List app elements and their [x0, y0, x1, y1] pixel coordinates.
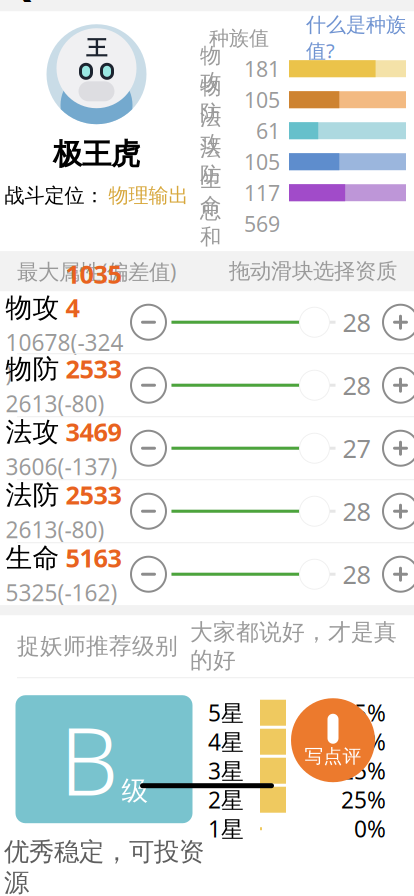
- staticText: 117: [244, 179, 280, 207]
- staticText: 物防: [200, 73, 221, 126]
- staticText: 物防: [5, 353, 59, 385]
- button[interactable]: Increase 法防: [377, 486, 414, 536]
- staticText: 10678(-324): [5, 327, 123, 387]
- staticText: 2533: [65, 352, 121, 385]
- staticText: 28: [342, 368, 370, 402]
- staticText: 法攻: [200, 104, 221, 157]
- staticText: 物攻: [200, 42, 221, 95]
- button[interactable]: Decrease 法防: [125, 486, 171, 536]
- button[interactable]: 写点评: [291, 698, 375, 782]
- staticText: 战斗定位：: [4, 183, 104, 208]
- staticText: 法防: [5, 479, 59, 511]
- button[interactable]: 什么是种族值?: [306, 13, 406, 64]
- staticText: 物理输出: [108, 183, 188, 208]
- staticText: 捉妖师推荐级别: [17, 632, 178, 660]
- button[interactable]: Increase 法攻: [377, 423, 414, 473]
- staticText: B: [59, 697, 118, 821]
- staticText: 25%: [341, 727, 386, 757]
- staticText: 105: [244, 148, 280, 176]
- staticText: 王: [86, 35, 107, 61]
- staticText: 3星: [208, 756, 244, 786]
- staticText: 25%: [341, 785, 386, 815]
- staticText: 生命: [5, 542, 59, 574]
- staticText: 27: [342, 431, 370, 465]
- staticText: 5星: [208, 698, 244, 728]
- staticText: 生命: [200, 166, 221, 219]
- staticText: 最大属性(偏差值): [17, 257, 176, 285]
- staticText: 28: [342, 494, 370, 528]
- staticText: 569: [244, 210, 280, 238]
- staticText: 25%: [341, 756, 386, 786]
- staticText: 级: [121, 774, 148, 807]
- staticText: 2533: [65, 478, 121, 511]
- staticText: 总和: [200, 197, 221, 250]
- staticText: 4星: [208, 727, 244, 757]
- staticText: 拖动滑块选择资质: [229, 258, 397, 284]
- staticText: 61: [256, 117, 280, 145]
- staticText: 3606(-137): [5, 451, 117, 482]
- staticText: 物攻: [5, 291, 59, 324]
- staticText: 2星: [208, 785, 244, 815]
- staticText: 什么是种族值?: [306, 13, 406, 64]
- button[interactable]: Decrease 法攻: [125, 423, 171, 473]
- staticText: 法防: [200, 135, 221, 188]
- button[interactable]: Back: [0, 0, 46, 6]
- staticText: 种族值: [209, 26, 269, 50]
- button[interactable]: Decrease 生命: [125, 549, 171, 599]
- staticText: 181: [244, 55, 280, 83]
- staticText: 1星: [208, 814, 244, 844]
- staticText: ❮: [9, 0, 36, 1]
- staticText: 28: [342, 557, 370, 591]
- staticText: 25%: [341, 698, 386, 728]
- staticText: 大家都说好，才是真的好: [190, 618, 397, 674]
- button[interactable]: Decrease 物防: [125, 360, 171, 410]
- staticText: 优秀稳定，可投资源: [4, 836, 204, 896]
- staticText: 3469: [65, 415, 121, 448]
- staticText: 2613(-80): [5, 514, 104, 545]
- staticText: 法攻: [5, 416, 59, 448]
- staticText: 0%: [354, 814, 386, 844]
- staticText: 28: [342, 305, 370, 339]
- button[interactable]: Increase 生命: [377, 549, 414, 599]
- staticText: 2613(-80): [5, 388, 104, 419]
- staticText: 极王虎: [53, 136, 140, 172]
- staticText: 5163: [65, 541, 121, 574]
- staticText: 5325(-162): [5, 577, 117, 608]
- staticText: 10354: [65, 257, 121, 324]
- staticText: 105: [244, 86, 280, 114]
- button[interactable]: Increase 物防: [377, 360, 414, 410]
- staticText: 写点评: [304, 745, 361, 768]
- button[interactable]: Decrease 物攻: [125, 297, 171, 347]
- button[interactable]: Increase 物攻: [377, 297, 414, 347]
